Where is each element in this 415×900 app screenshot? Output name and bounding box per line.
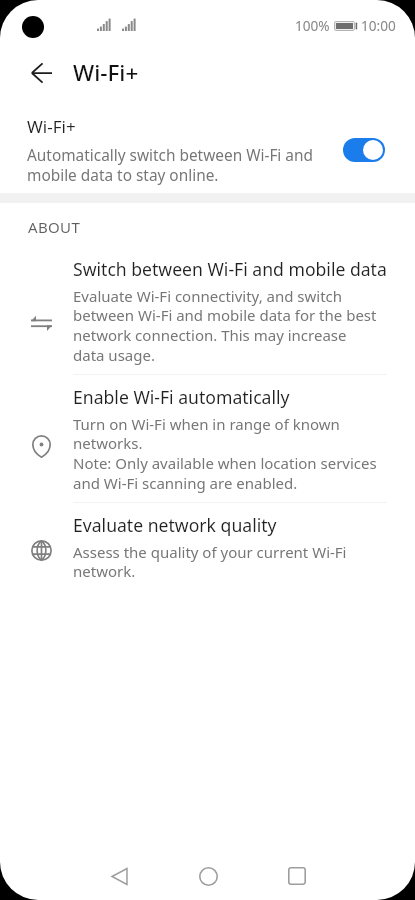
staticText: Automatically switch between Wi-Fi and m…	[27, 145, 313, 185]
staticText: Enable Wi-Fi automatically	[73, 385, 290, 409]
staticText: Evaluate Wi-Fi connectivity, and switch …	[73, 286, 377, 366]
staticText: 100%	[295, 16, 330, 35]
button[interactable]: Home	[180, 852, 236, 900]
button[interactable]: Enable Wi-Fi automatically	[0, 375, 415, 503]
button[interactable]: Recents	[269, 852, 325, 900]
staticText: Wi-Fi+	[27, 115, 76, 138]
staticText: Turn on Wi-Fi when in range of known net…	[73, 414, 377, 494]
button[interactable]: Wi-Fi+	[0, 99, 415, 193]
staticText: Wi-Fi+	[73, 57, 139, 88]
button[interactable]: Back	[13, 47, 69, 99]
button[interactable]: Wi-Fi+ switch	[343, 138, 385, 162]
staticText: ABOUT	[28, 217, 81, 237]
staticText: 10:00	[361, 16, 396, 35]
staticText: Assess the quality of your current Wi-Fi…	[73, 542, 347, 582]
staticText: Switch between Wi-Fi and mobile data	[73, 257, 387, 281]
staticText: Evaluate network quality	[73, 513, 277, 537]
button[interactable]: Switch between Wi-Fi and mobile data	[0, 247, 415, 375]
button[interactable]: Evaluate network quality	[0, 503, 415, 590]
button[interactable]: Back	[91, 852, 147, 900]
